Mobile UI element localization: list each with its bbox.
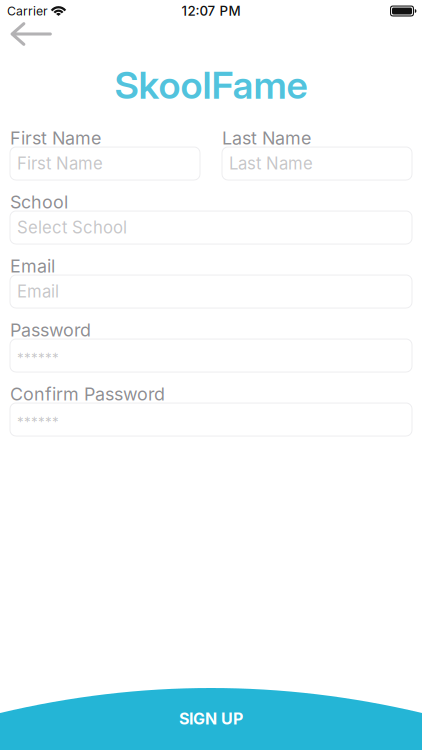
- staticText: First Name: [17, 153, 103, 174]
- staticText: 12:07 PM: [181, 3, 240, 19]
- staticText: SkoolFame: [114, 62, 307, 108]
- staticText: Last Name: [222, 127, 311, 149]
- button[interactable]: Back: [0, 22, 72, 48]
- staticText: Carrier: [7, 4, 48, 18]
- staticText: Confirm Password: [10, 383, 165, 405]
- staticText: Last Name: [229, 153, 313, 174]
- staticText: Email: [10, 255, 55, 277]
- staticText: ******: [17, 414, 59, 430]
- staticText: School: [10, 191, 68, 213]
- staticText: Email: [17, 281, 59, 302]
- staticText: Password: [10, 319, 91, 341]
- button[interactable]: SIGN UP: [0, 688, 422, 750]
- staticText: First Name: [10, 127, 101, 149]
- staticText: SIGN UP: [179, 709, 243, 728]
- staticText: Select School: [17, 217, 127, 238]
- staticText: ******: [17, 350, 59, 366]
